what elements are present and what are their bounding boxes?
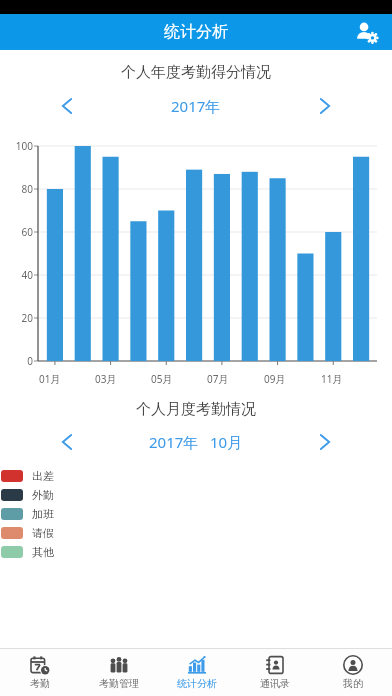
- staticText: 07月: [207, 372, 229, 386]
- staticText: 个人年度考勤得分情况: [0, 63, 392, 82]
- button[interactable]: Next: [312, 93, 338, 119]
- staticText: 20: [0, 311, 33, 325]
- button[interactable]: Next: [312, 429, 338, 455]
- button[interactable]: 我的: [314, 649, 392, 696]
- staticText: 80: [0, 182, 33, 196]
- staticText: 60: [0, 225, 33, 239]
- button[interactable]: Previous: [54, 429, 80, 455]
- staticText: 09月: [264, 372, 286, 386]
- button[interactable]: 考勤管理: [79, 649, 158, 696]
- staticText: 100: [0, 139, 33, 153]
- staticText: 统计分析: [177, 677, 217, 690]
- button[interactable]: 统计分析: [158, 649, 236, 696]
- staticText: 40: [0, 268, 33, 282]
- staticText: 2017年 10月: [149, 432, 243, 452]
- staticText: 出差: [32, 469, 54, 483]
- staticText: 0: [0, 354, 33, 368]
- button[interactable]: User settings: [352, 18, 380, 46]
- staticText: 加班: [32, 507, 54, 521]
- staticText: 03月: [95, 372, 117, 386]
- button[interactable]: 通讯录: [236, 649, 314, 696]
- staticText: 请假: [32, 526, 54, 540]
- staticText: 个人月度考勤情况: [0, 400, 392, 419]
- staticText: 其他: [32, 545, 54, 559]
- staticText: 01月: [39, 372, 61, 386]
- button[interactable]: 考勤: [0, 649, 79, 696]
- staticText: 统计分析: [164, 22, 228, 42]
- button[interactable]: Previous: [54, 93, 80, 119]
- staticText: 2017年: [171, 96, 221, 116]
- staticText: 05月: [151, 372, 173, 386]
- staticText: 外勤: [32, 488, 54, 502]
- staticText: 考勤: [30, 677, 50, 690]
- staticText: 11月: [321, 372, 343, 386]
- staticText: 通讯录: [260, 677, 290, 690]
- staticText: 我的: [343, 677, 363, 690]
- staticText: 考勤管理: [99, 677, 139, 690]
